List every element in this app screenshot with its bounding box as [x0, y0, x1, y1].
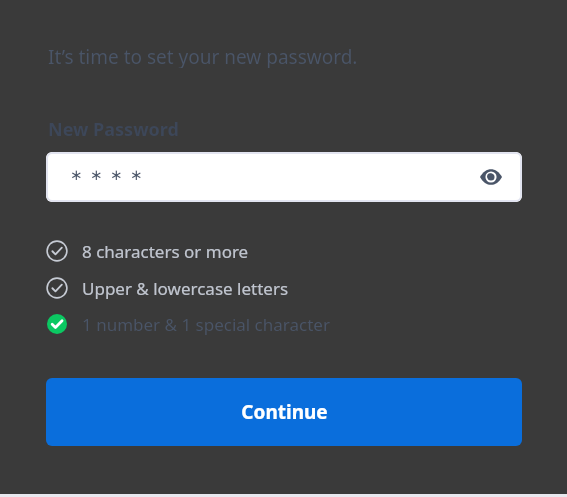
staticText: ∗	[130, 166, 143, 183]
button[interactable]: ∗	[46, 152, 522, 202]
button[interactable]: Show password	[474, 160, 508, 194]
staticText: ∗	[90, 166, 103, 183]
staticText: Upper & lowercase letters	[82, 277, 289, 300]
staticText: ∗	[70, 166, 83, 183]
staticText: ∗	[110, 166, 123, 183]
button[interactable]: Upper & lowercase letters	[46, 276, 289, 300]
staticText: Continue	[241, 399, 328, 425]
staticText: 8 characters or more	[82, 240, 249, 263]
button[interactable]: 8 characters or more	[46, 239, 249, 263]
staticText: It’s time to set your new password.	[48, 44, 358, 68]
staticText: 1 number & 1 special character	[82, 313, 330, 336]
button[interactable]: 1 number & 1 special character	[46, 312, 330, 336]
staticText: New Password	[48, 117, 179, 141]
button[interactable]: Continue	[46, 378, 522, 446]
